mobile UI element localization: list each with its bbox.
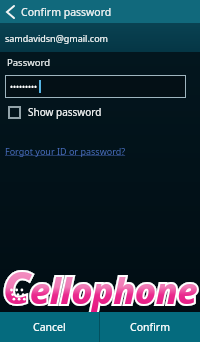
button[interactable]: Cancel: [0, 312, 99, 342]
button[interactable]: Confirm: [100, 312, 200, 342]
button[interactable]: Confirm password: [0, 0, 200, 23]
staticText: Password: [7, 56, 50, 69]
staticText: Cellophone: [3, 257, 198, 317]
staticText: Cellophone: [3, 257, 198, 317]
button[interactable]: Show password: [8, 105, 102, 119]
staticText: Show password: [28, 105, 102, 119]
staticText: Cancel: [33, 320, 66, 334]
staticText: Confirm: [130, 320, 170, 334]
button[interactable]: •••••••••: [5, 75, 186, 98]
staticText: Confirm password: [21, 5, 112, 19]
staticText: samdavidsn@gmail.com: [5, 32, 108, 44]
button[interactable]: Forgot your ID or password?: [5, 145, 126, 157]
staticText: •••••••••: [10, 81, 38, 92]
